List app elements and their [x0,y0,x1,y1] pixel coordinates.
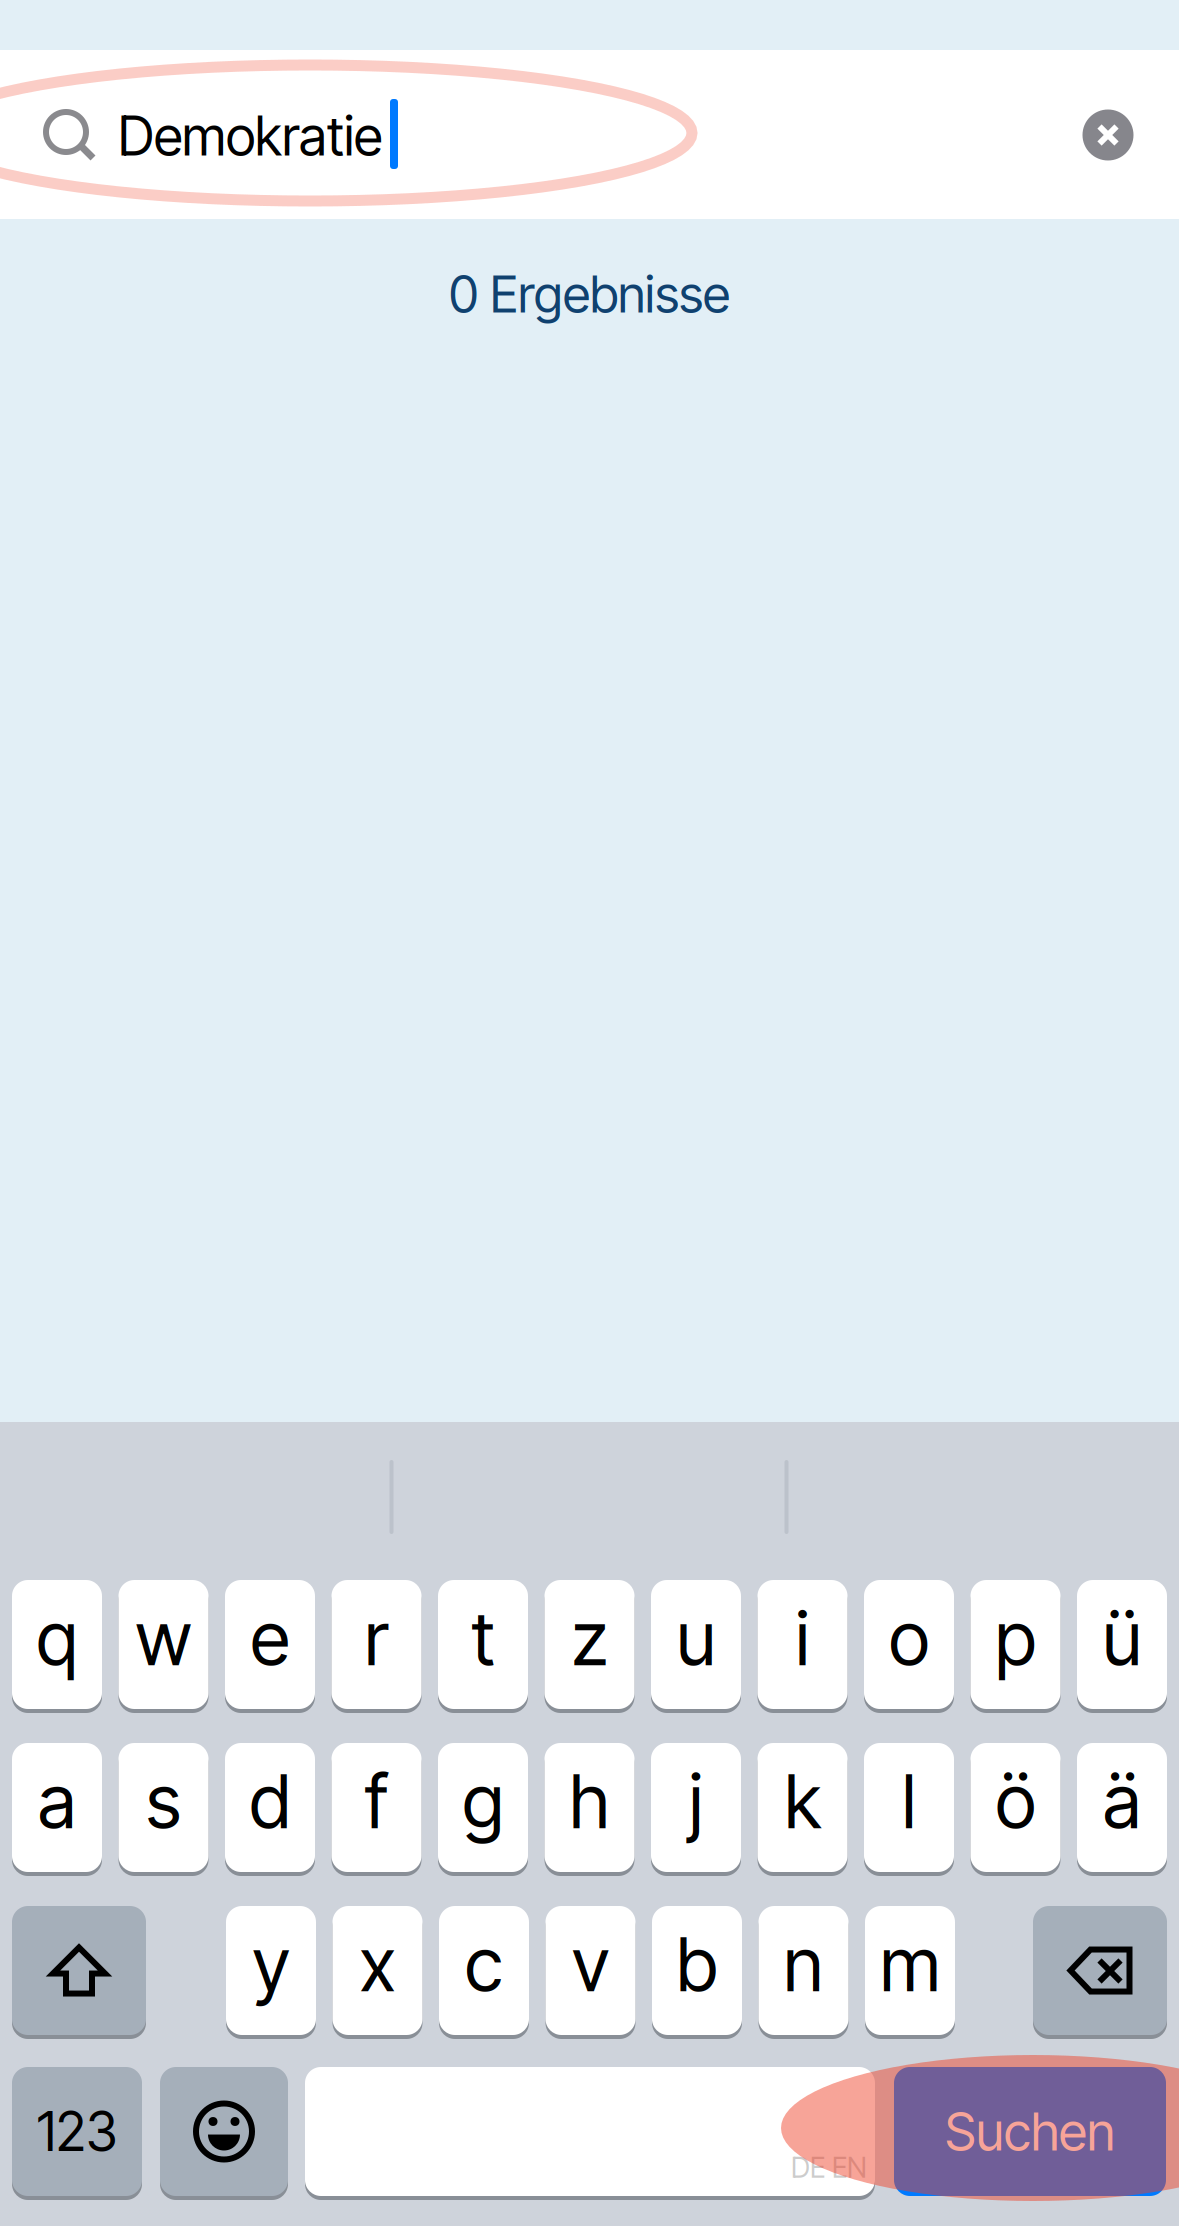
button[interactable]: y [226,1906,316,2035]
staticText: k [784,1757,820,1846]
button[interactable]: ä [1077,1743,1167,1872]
button[interactable]: Clear search text [1082,109,1133,160]
button[interactable]: Suchen [894,2067,1166,2196]
button[interactable]: ö [970,1743,1060,1872]
button[interactable]: g [438,1743,528,1872]
button[interactable]: z [544,1580,634,1709]
staticText: e [250,1594,289,1683]
button[interactable]: j [651,1743,741,1872]
staticText: r [364,1594,388,1683]
staticText: a [38,1757,76,1846]
staticText: d [249,1757,290,1846]
staticText: ä [1103,1757,1141,1846]
staticText: 0 Ergebnisse [449,263,730,325]
button[interactable]: m [865,1906,955,2035]
staticText: i [795,1594,809,1683]
button[interactable]: Shift [12,1906,146,2035]
button[interactable]: ü [1077,1580,1167,1709]
button[interactable]: Emoji [160,2067,288,2196]
button[interactable]: Delete [1033,1906,1167,2035]
button[interactable]: Numbers and symbols [12,2067,142,2196]
button[interactable]: o [864,1580,954,1709]
staticText: DE EN [791,2151,867,2184]
staticText: y [252,1920,289,2009]
staticText: v [572,1920,609,2009]
staticText: f [365,1757,388,1846]
staticText: l [902,1757,916,1846]
button[interactable]: t [438,1580,528,1709]
button[interactable]: p [970,1580,1060,1709]
button[interactable]: q [12,1580,102,1709]
button[interactable]: u [651,1580,741,1709]
staticText: o [889,1594,929,1683]
button[interactable]: l [864,1743,954,1872]
staticText: ö [995,1757,1035,1846]
staticText: q [36,1594,77,1683]
staticText: Demokratie [118,104,382,168]
staticText: j [689,1757,703,1846]
staticText: m [880,1920,940,2009]
button[interactable]: b [652,1906,742,2035]
button[interactable]: c [439,1906,529,2035]
button[interactable]: r [331,1580,421,1709]
staticText: t [471,1594,494,1683]
button[interactable]: Space [305,2067,875,2196]
staticText: c [465,1920,503,2009]
button[interactable]: f [331,1743,421,1872]
button[interactable]: i [757,1580,847,1709]
staticText: g [462,1757,503,1846]
staticText: p [995,1594,1036,1683]
staticText: z [571,1594,607,1683]
button[interactable]: s [118,1743,208,1872]
staticText: h [569,1757,609,1846]
staticText: u [676,1594,715,1683]
staticText: 123 [37,2099,117,2164]
staticText: w [135,1594,191,1683]
staticText: n [783,1920,823,2009]
button[interactable]: h [544,1743,634,1872]
button[interactable]: k [757,1743,847,1872]
button[interactable]: n [758,1906,848,2035]
button[interactable]: v [545,1906,635,2035]
button[interactable]: a [12,1743,102,1872]
staticText: x [359,1920,395,2009]
staticText: s [146,1757,181,1846]
staticText: Suchen [945,2100,1115,2163]
button[interactable]: e [225,1580,315,1709]
button[interactable]: d [225,1743,315,1872]
button[interactable]: x [332,1906,422,2035]
button[interactable]: w [118,1580,208,1709]
staticText: b [676,1920,717,2009]
staticText: ü [1102,1594,1141,1683]
button[interactable]: Demokratie [0,50,1179,219]
